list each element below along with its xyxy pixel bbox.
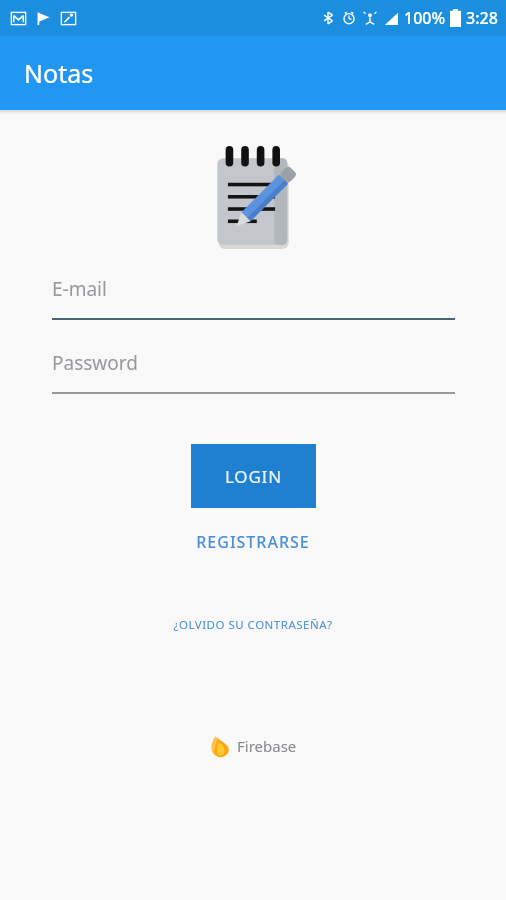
- staticText: Password: [52, 350, 138, 376]
- button[interactable]: E-mail: [52, 274, 455, 320]
- staticText: Firebase: [237, 736, 297, 756]
- staticText: REGISTRARSE: [196, 531, 310, 553]
- staticText: E-mail: [52, 276, 107, 302]
- staticText: Notas: [24, 56, 94, 90]
- staticText: 3:28: [466, 7, 498, 29]
- button[interactable]: Password: [52, 348, 455, 394]
- staticText: ¿OLVIDO SU CONTRASEÑA?: [173, 617, 333, 633]
- staticText: LOGIN: [225, 465, 282, 488]
- button[interactable]: ¿OLVIDO SU CONTRASEÑA?: [173, 617, 333, 633]
- staticText: 100%: [404, 7, 446, 29]
- button[interactable]: LOGIN: [191, 444, 316, 508]
- button[interactable]: REGISTRARSE: [196, 531, 310, 553]
